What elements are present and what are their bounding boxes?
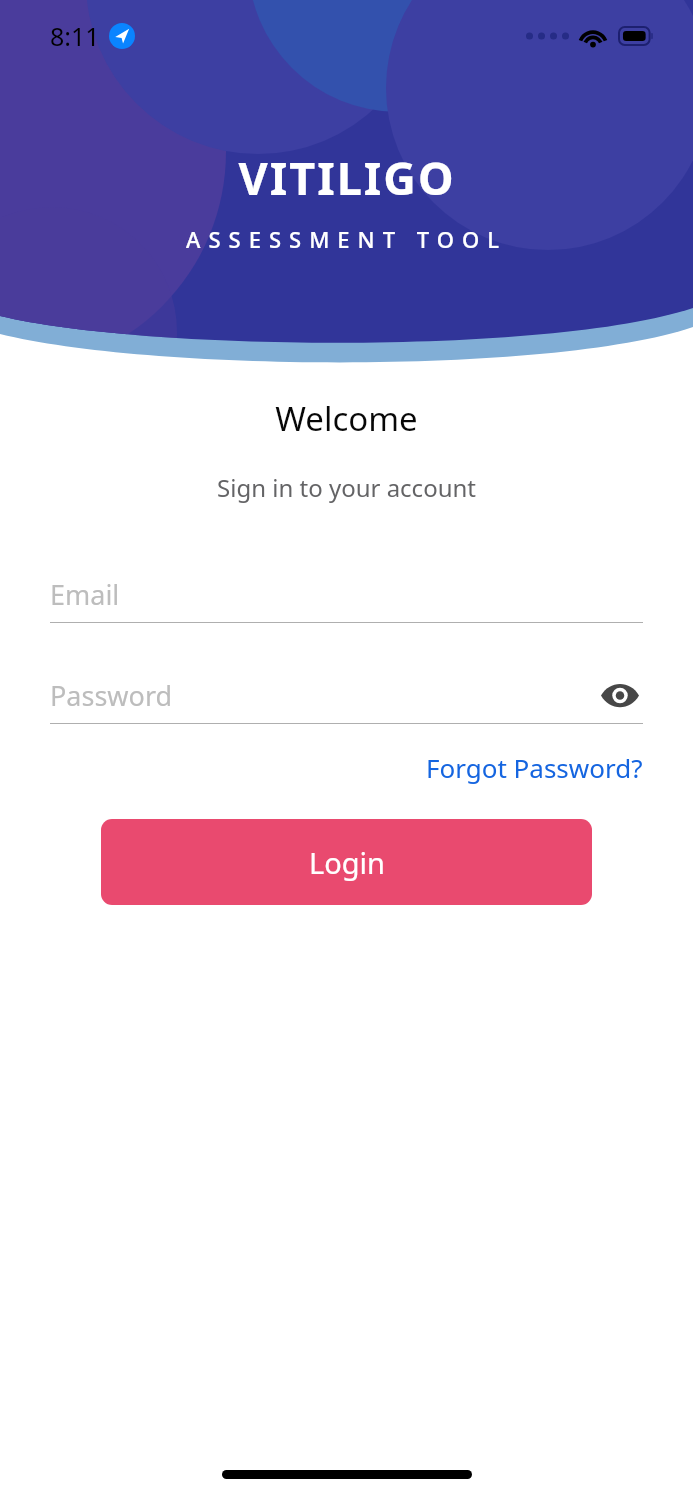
button[interactable]: Forgot Password? <box>426 746 643 789</box>
staticText: Forgot Password? <box>426 750 643 785</box>
button[interactable]: Password <box>50 667 643 723</box>
staticText: VITILIGO <box>238 147 456 208</box>
staticText: 8:11 <box>50 19 100 53</box>
staticText: Email <box>50 576 120 613</box>
button[interactable]: Login <box>101 819 592 905</box>
staticText: Password <box>50 677 173 714</box>
button[interactable]: Show password <box>597 672 643 718</box>
button[interactable]: Email <box>50 566 643 622</box>
staticText: Welcome <box>0 396 693 441</box>
staticText: ASSESSMENT TOOL <box>186 224 507 254</box>
staticText: Login <box>309 843 385 882</box>
staticText: Sign in to your account <box>0 471 693 504</box>
